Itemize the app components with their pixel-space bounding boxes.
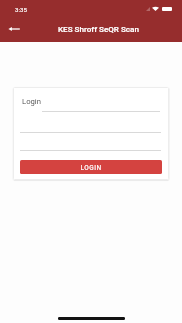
button[interactable]: Login bbox=[20, 91, 162, 112]
button[interactable]: Password input field bbox=[20, 114, 161, 133]
staticText: 3:35 bbox=[15, 6, 27, 13]
staticText: Login bbox=[22, 97, 41, 106]
button[interactable]: Back bbox=[5, 20, 23, 38]
button[interactable]: Input field bbox=[20, 133, 161, 151]
button[interactable]: LOGIN bbox=[20, 160, 162, 174]
staticText: KES Shroff SeQR Scan bbox=[58, 24, 139, 33]
staticText: LOGIN bbox=[80, 164, 102, 172]
